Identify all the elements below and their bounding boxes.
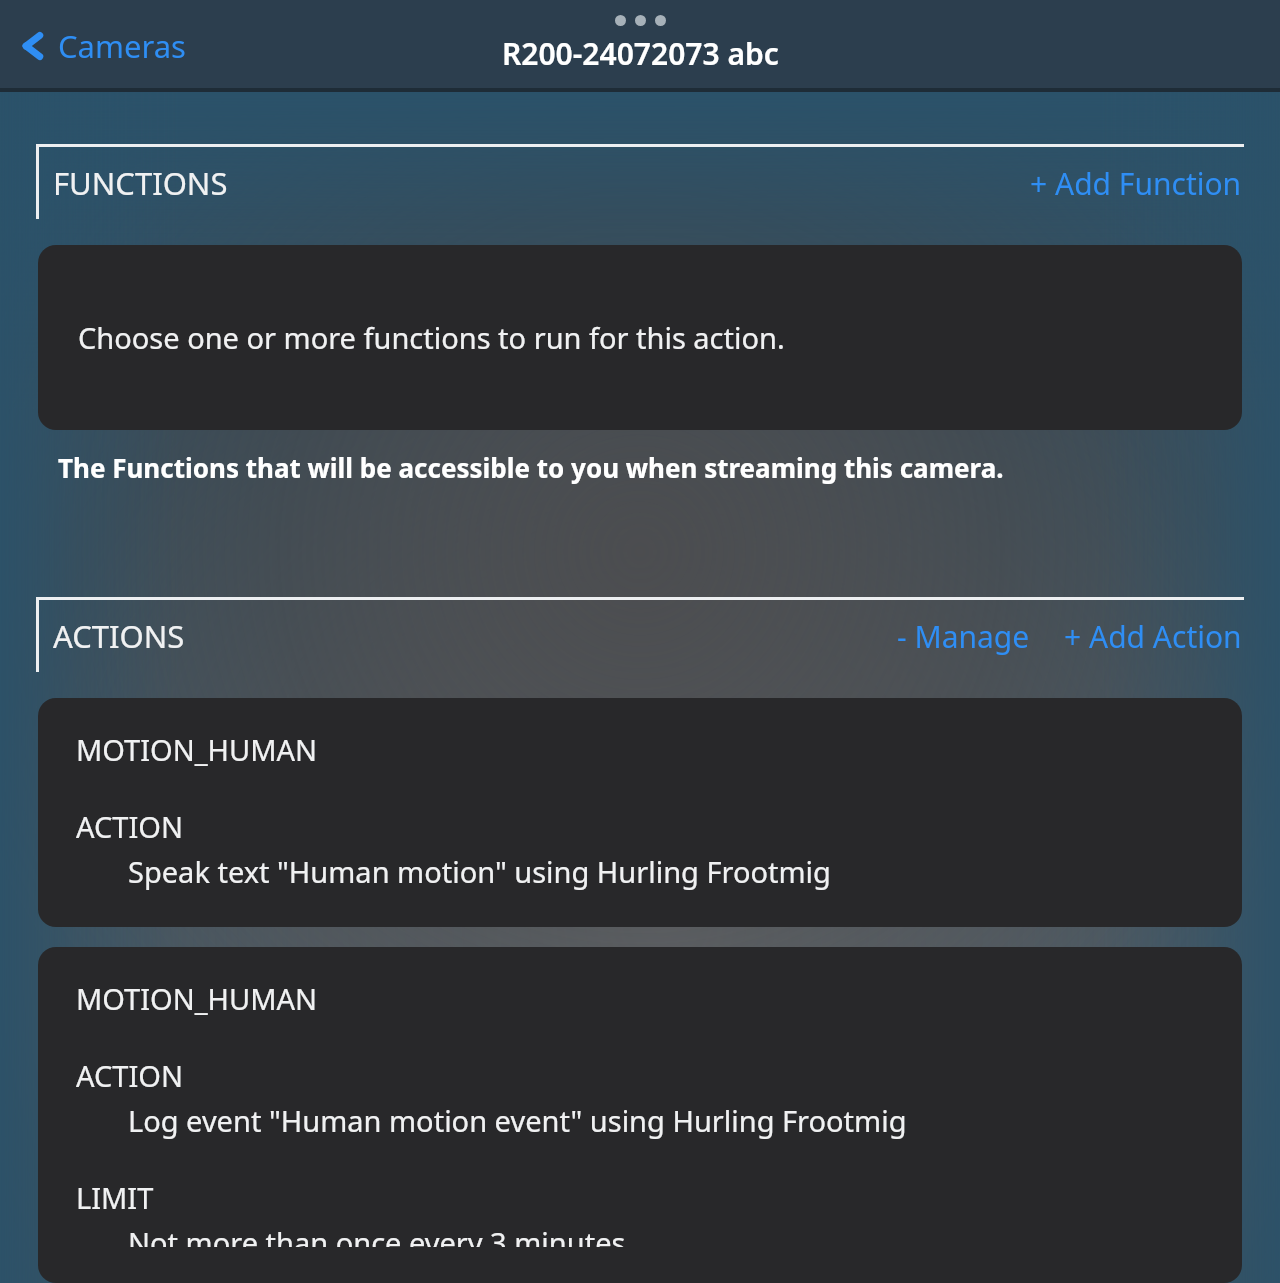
staticText: Cameras — [58, 25, 186, 67]
button[interactable]: + Add Action — [1062, 608, 1244, 665]
staticText: The Functions that will be accessible to… — [58, 450, 1004, 485]
staticText: Log event "Human motion event" using Hur… — [128, 1101, 907, 1140]
button[interactable]: Choose one or more functions to run for … — [38, 245, 1242, 430]
staticText: ACTION — [76, 807, 183, 846]
staticText: + Add Action — [1064, 616, 1242, 657]
button[interactable]: - Manage — [895, 608, 1032, 665]
staticText: ACTION — [76, 1056, 183, 1095]
staticText: R200-24072073 abc — [502, 33, 779, 74]
staticText: LIMIT — [76, 1178, 154, 1217]
button[interactable]: MOTION_HUMAN — [38, 698, 1242, 927]
button[interactable]: Cameras — [16, 25, 194, 67]
staticText: Not more than once every 3 minutes. — [128, 1223, 634, 1247]
staticText: MOTION_HUMAN — [76, 979, 318, 1018]
staticText: FUNCTIONS — [53, 162, 228, 204]
staticText: ACTIONS — [53, 615, 185, 657]
staticText: MOTION_HUMAN — [76, 730, 318, 769]
staticText: + Add Function — [1030, 163, 1242, 204]
staticText: Speak text "Human motion" using Hurling … — [128, 852, 831, 891]
button[interactable]: MOTION_HUMAN — [38, 947, 1242, 1283]
button[interactable]: + Add Function — [1028, 155, 1244, 212]
staticText: Choose one or more functions to run for … — [78, 318, 785, 357]
staticText: - Manage — [897, 616, 1030, 657]
